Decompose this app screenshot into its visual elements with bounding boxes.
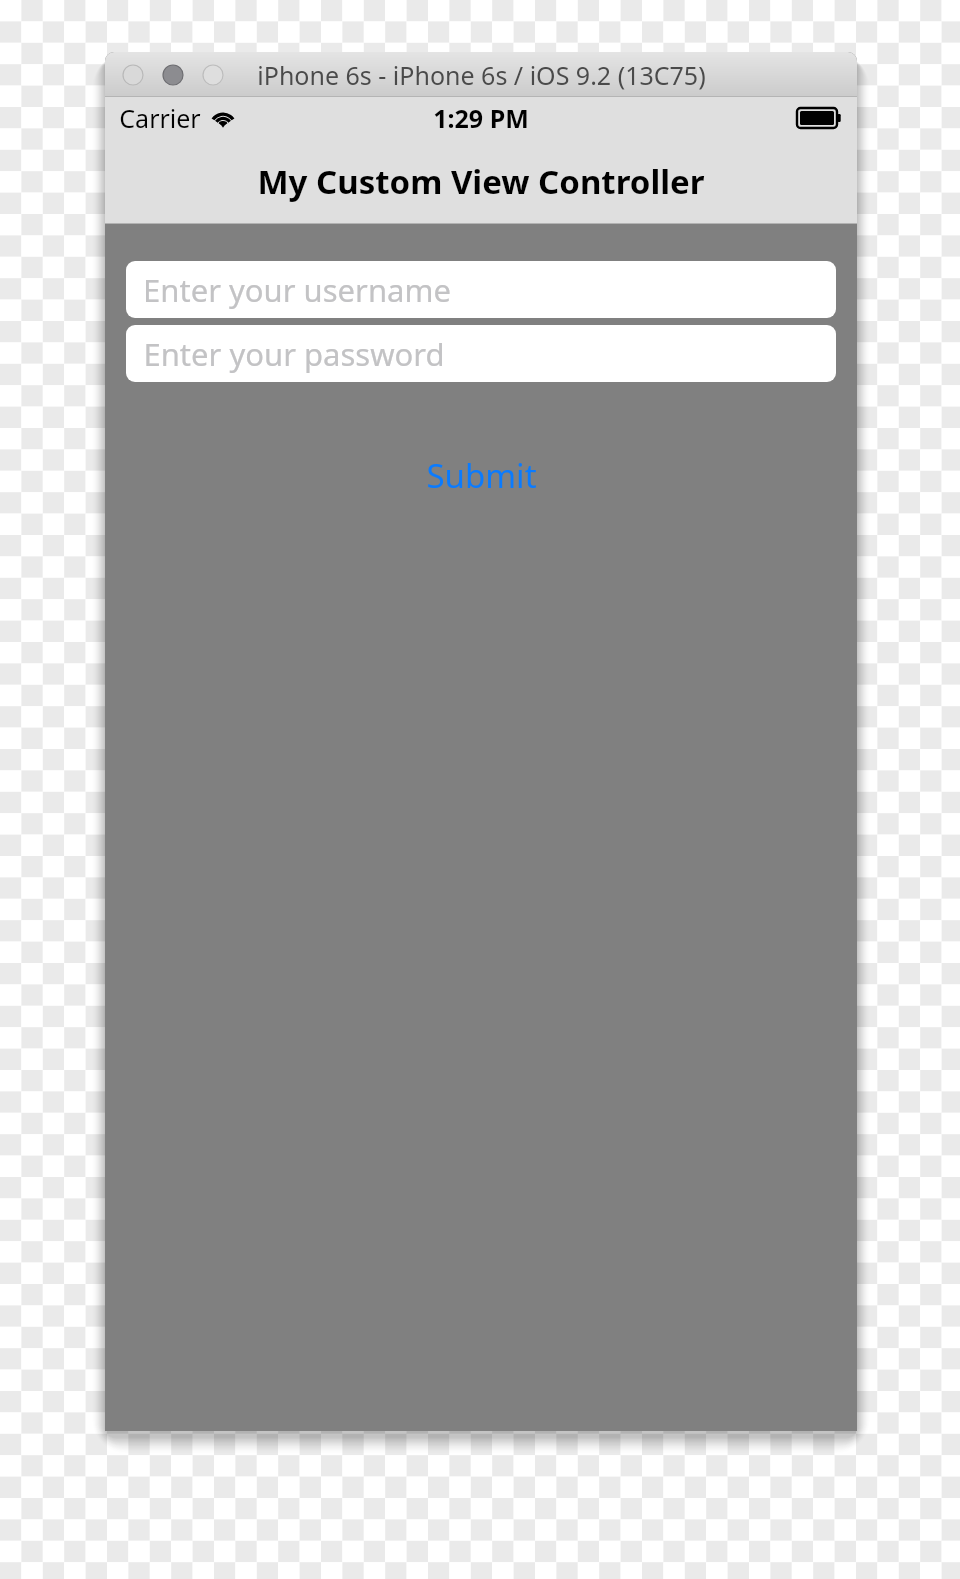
staticText: Carrier — [119, 101, 201, 135]
button[interactable]: Enter your username — [126, 261, 836, 318]
other: Battery full — [797, 108, 841, 128]
staticText: Enter your password — [143, 333, 445, 375]
staticText: Enter your username — [143, 269, 451, 311]
button[interactable]: Submit — [417, 451, 545, 500]
staticText: Submit — [426, 453, 537, 498]
staticText: My Custom View Controller — [257, 159, 705, 204]
staticText: iPhone 6s - iPhone 6s / iOS 9.2 (13C75) — [257, 58, 706, 92]
staticText: 1:29 PM — [433, 101, 529, 135]
button[interactable]: Enter your password — [126, 325, 836, 382]
